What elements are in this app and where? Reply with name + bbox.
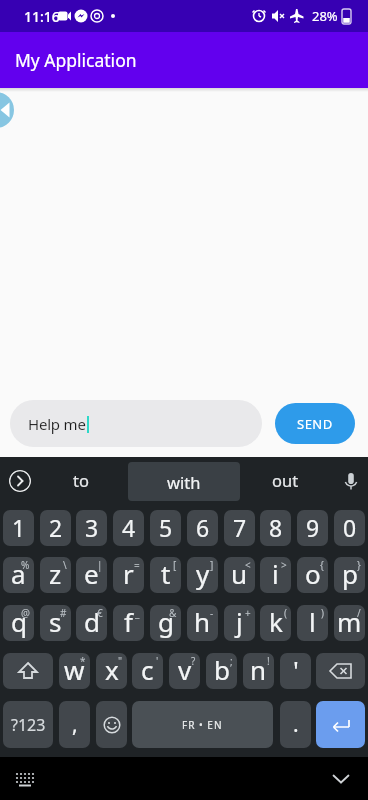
button[interactable]: d bbox=[76, 605, 107, 641]
staticText: 28% bbox=[312, 7, 338, 25]
button[interactable]: to bbox=[73, 469, 89, 491]
button[interactable]: l bbox=[297, 605, 328, 641]
staticText: 11:16 bbox=[24, 7, 60, 26]
staticText: p bbox=[342, 557, 358, 591]
staticText: 4 bbox=[122, 512, 136, 543]
staticText: ] bbox=[210, 558, 214, 572]
staticText: g bbox=[158, 605, 174, 639]
staticText: 7 bbox=[233, 512, 247, 543]
staticText: b bbox=[214, 653, 230, 687]
staticText: ) bbox=[321, 606, 324, 620]
button[interactable] bbox=[3, 653, 53, 689]
button[interactable]: 1 bbox=[3, 510, 34, 546]
button[interactable]: 5 bbox=[150, 510, 181, 546]
button[interactable]: 7 bbox=[224, 510, 255, 546]
button[interactable]: r bbox=[113, 557, 144, 593]
staticText: _ bbox=[135, 606, 140, 620]
button[interactable]: ' bbox=[280, 653, 311, 689]
staticText: 8 bbox=[269, 512, 283, 543]
button[interactable]: q bbox=[3, 605, 34, 641]
staticText: ! bbox=[267, 654, 270, 668]
staticText: 0 bbox=[343, 512, 357, 543]
button[interactable] bbox=[0, 92, 14, 128]
staticText: = bbox=[134, 558, 140, 572]
staticText: 3 bbox=[85, 512, 99, 543]
button[interactable]: 4 bbox=[113, 510, 144, 546]
button[interactable]: i bbox=[260, 557, 291, 593]
staticText: / bbox=[357, 606, 361, 620]
button[interactable]: m bbox=[334, 605, 365, 641]
button[interactable]: w bbox=[59, 653, 90, 689]
button[interactable]: t bbox=[150, 557, 181, 593]
staticText: s bbox=[49, 605, 62, 639]
button[interactable]: p bbox=[334, 557, 365, 593]
staticText: } bbox=[357, 558, 361, 572]
button[interactable]: y bbox=[187, 557, 218, 593]
staticText: ' bbox=[293, 653, 299, 687]
button[interactable] bbox=[15, 771, 35, 787]
staticText: m bbox=[337, 605, 362, 639]
button[interactable]: 2 bbox=[40, 510, 71, 546]
staticText: f bbox=[124, 605, 133, 639]
staticText: My Application bbox=[15, 48, 137, 72]
staticText: FR • EN bbox=[182, 718, 223, 732]
button[interactable]: SEND bbox=[275, 403, 355, 444]
button[interactable]: j bbox=[224, 605, 255, 641]
button[interactable]: , bbox=[59, 701, 90, 748]
staticText: q bbox=[11, 605, 27, 639]
button[interactable]: b bbox=[206, 653, 237, 689]
staticText: SEND bbox=[297, 415, 333, 433]
button[interactable] bbox=[96, 701, 127, 748]
button[interactable]: h bbox=[187, 605, 218, 641]
button[interactable]: 9 bbox=[297, 510, 328, 546]
staticText: + bbox=[245, 606, 251, 620]
button[interactable] bbox=[316, 701, 365, 748]
button[interactable]: n bbox=[243, 653, 274, 689]
button[interactable]: x bbox=[96, 653, 127, 689]
button[interactable]: a bbox=[3, 557, 34, 593]
button[interactable]: 0 bbox=[334, 510, 365, 546]
button[interactable]: f bbox=[113, 605, 144, 641]
button[interactable]: z bbox=[40, 557, 71, 593]
button[interactable]: o bbox=[297, 557, 328, 593]
staticText: i bbox=[272, 557, 279, 591]
button[interactable]: e bbox=[76, 557, 107, 593]
button[interactable] bbox=[343, 470, 359, 492]
button[interactable]: k bbox=[260, 605, 291, 641]
staticText: ; bbox=[230, 654, 233, 668]
staticText: < bbox=[245, 558, 251, 572]
staticText: ' bbox=[156, 654, 159, 668]
staticText: w bbox=[64, 653, 85, 687]
button[interactable]: out bbox=[272, 469, 299, 491]
button[interactable]: Help me bbox=[10, 400, 262, 447]
staticText: t bbox=[161, 557, 171, 591]
staticText: ? bbox=[191, 654, 196, 668]
button[interactable]: with bbox=[128, 462, 240, 501]
staticText: h bbox=[194, 605, 211, 639]
staticText: a bbox=[11, 557, 26, 591]
button[interactable] bbox=[332, 773, 350, 785]
staticText: x bbox=[105, 653, 119, 687]
staticText: k bbox=[269, 605, 283, 639]
button[interactable]: u bbox=[224, 557, 255, 593]
button[interactable]: 8 bbox=[260, 510, 291, 546]
button[interactable]: v bbox=[169, 653, 200, 689]
staticText: d bbox=[84, 605, 100, 639]
button[interactable]: . bbox=[280, 701, 311, 748]
button[interactable]: 6 bbox=[187, 510, 218, 546]
button[interactable]: ?123 bbox=[3, 701, 53, 748]
button[interactable]: 3 bbox=[76, 510, 107, 546]
staticText: , bbox=[72, 710, 78, 739]
button[interactable]: s bbox=[40, 605, 71, 641]
button[interactable]: c bbox=[132, 653, 163, 689]
button[interactable] bbox=[316, 653, 365, 689]
button[interactable]: g bbox=[150, 605, 181, 641]
staticText: 9 bbox=[306, 512, 320, 543]
staticText: & bbox=[169, 606, 177, 620]
staticText: y bbox=[196, 557, 210, 591]
staticText: { bbox=[320, 558, 324, 572]
staticText: 1 bbox=[12, 512, 26, 543]
button[interactable] bbox=[9, 470, 31, 492]
staticText: v bbox=[178, 653, 192, 687]
button[interactable]: FR • EN bbox=[132, 701, 273, 748]
